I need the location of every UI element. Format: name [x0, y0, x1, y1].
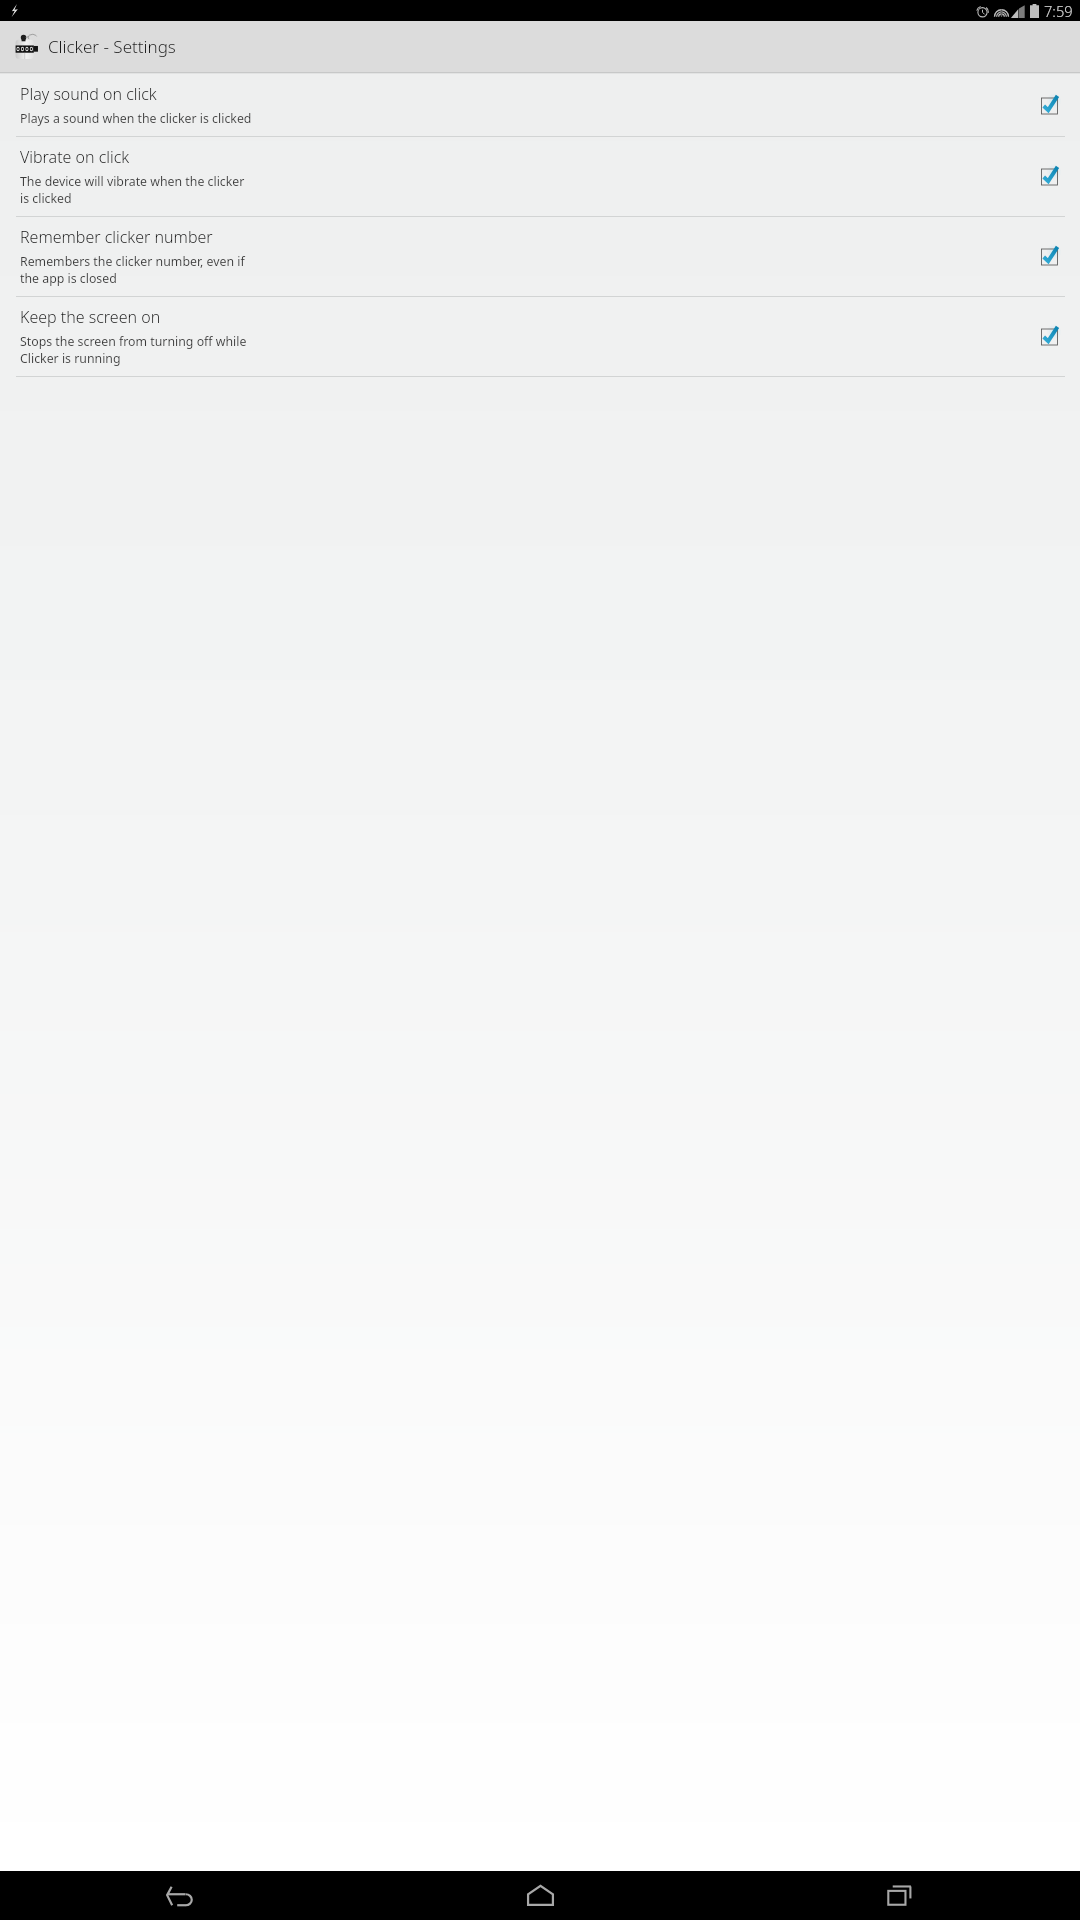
staticText: Remembers the clicker number, even if [20, 253, 245, 270]
staticText: the app is closed [20, 270, 117, 287]
staticText: is clicked [20, 190, 72, 207]
staticText: Stops the screen from turning off while [20, 333, 247, 350]
staticText: Plays a sound when the clicker is clicke… [20, 110, 252, 127]
staticText: Play sound on click [20, 83, 157, 105]
button[interactable]: Home [360, 1871, 720, 1920]
button[interactable]: Keep the screen on [0, 297, 1080, 376]
button[interactable]: Toggle setting [1040, 93, 1065, 118]
staticText: Clicker is running [20, 350, 121, 367]
button[interactable]: Toggle setting [1040, 164, 1065, 189]
button[interactable]: Vibrate on click [0, 137, 1080, 216]
staticText: Remember clicker number [20, 226, 213, 248]
button[interactable]: Toggle setting [1040, 324, 1065, 349]
button[interactable]: Toggle setting [1040, 244, 1065, 269]
button[interactable]: Back [0, 1871, 360, 1920]
staticText: Clicker - Settings [48, 35, 176, 58]
button[interactable]: Remember clicker number [0, 217, 1080, 296]
button[interactable]: Play sound on click [0, 74, 1080, 136]
staticText: Keep the screen on [20, 306, 161, 328]
staticText: Vibrate on click [20, 146, 130, 168]
button[interactable]: Recent apps [720, 1871, 1080, 1920]
staticText: The device will vibrate when the clicker [20, 173, 245, 190]
staticText: 7:59 [1044, 1, 1073, 21]
